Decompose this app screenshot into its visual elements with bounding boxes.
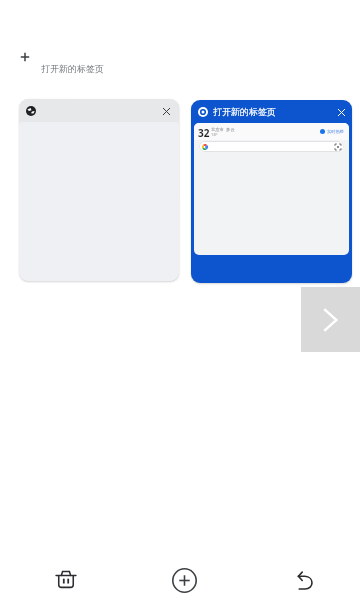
button[interactable]: Close tab: [159, 104, 173, 118]
staticText: 北京市 多云: [211, 126, 235, 132]
button[interactable]: Close tab: [19, 99, 179, 281]
staticText: 打开新的标签页: [213, 106, 276, 117]
other: New tab: [17, 49, 33, 65]
button[interactable]: Next: [301, 287, 360, 352]
button[interactable]: Close tab: [334, 105, 348, 119]
button[interactable]: New tab: [8, 40, 120, 80]
staticText: 打开新的标签页: [41, 63, 104, 74]
staticText: 实时热榜: [327, 129, 344, 134]
button[interactable]: Close all tabs: [42, 556, 90, 604]
button[interactable]: 打开新的标签页: [191, 100, 352, 283]
button[interactable]: Undo: [280, 556, 328, 604]
staticText: 32: [198, 126, 210, 140]
staticText: 18°: [211, 132, 218, 138]
button[interactable]: New tab: [160, 556, 208, 604]
